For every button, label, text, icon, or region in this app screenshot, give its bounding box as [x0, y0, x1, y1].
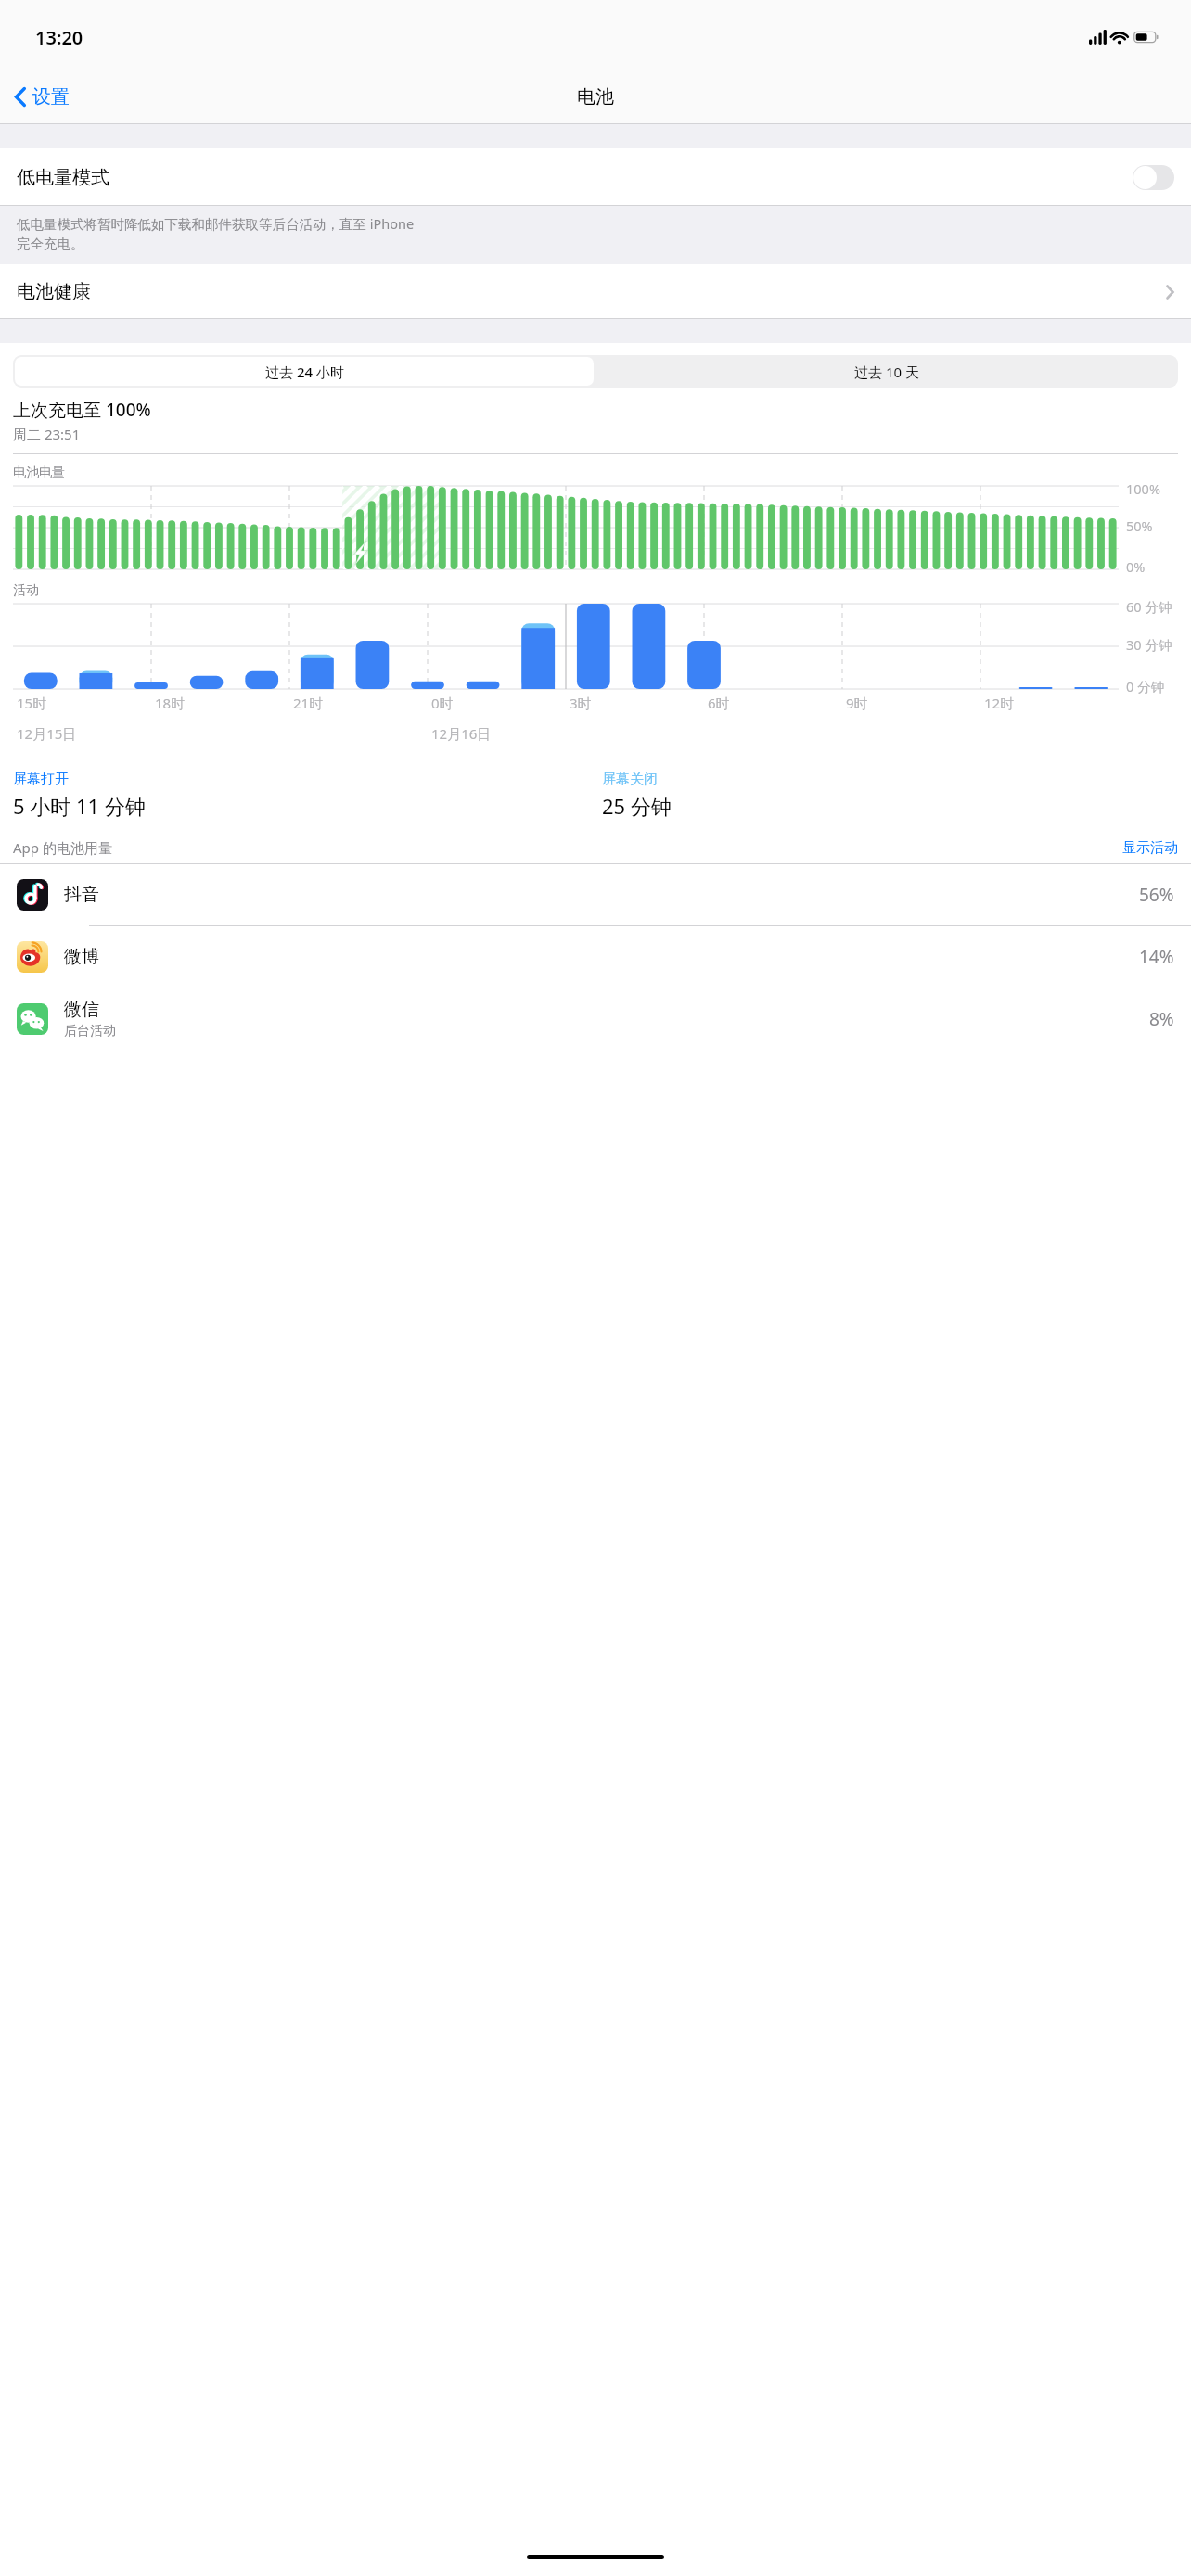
- staticText: 9时: [846, 694, 868, 712]
- button[interactable]: 设置: [9, 82, 75, 112]
- button[interactable]: 显示活动: [1122, 839, 1178, 857]
- staticText: 电池: [577, 85, 614, 108]
- button[interactable]: 微信: [0, 988, 1191, 1050]
- staticText: 低电量模式: [17, 166, 109, 189]
- staticText: 3时: [570, 694, 592, 712]
- staticText: 微信: [64, 999, 99, 1021]
- staticText: 抖音: [64, 884, 99, 906]
- staticText: 15时: [17, 694, 47, 712]
- staticText: 5 小时 11 分钟: [13, 792, 146, 820]
- button[interactable]: 低电量模式: [0, 148, 1191, 206]
- staticText: 50%: [1126, 516, 1153, 535]
- staticText: 电池电量: [13, 465, 65, 481]
- staticText: 12时: [984, 694, 1015, 712]
- staticText: 0 分钟: [1126, 677, 1165, 695]
- staticText: 上次充电至 100%: [13, 398, 151, 422]
- staticText: 25 分钟: [602, 792, 672, 820]
- staticText: 屏幕关闭: [602, 771, 658, 788]
- staticText: 13:20: [35, 25, 83, 50]
- button[interactable]: 电池健康: [0, 264, 1191, 319]
- staticText: 18时: [155, 694, 186, 712]
- staticText: 显示活动: [1122, 839, 1178, 857]
- button[interactable]: 抖音: [0, 864, 1191, 925]
- staticText: 电池健康: [17, 280, 91, 303]
- staticText: 56%: [1139, 883, 1174, 907]
- staticText: 0时: [431, 694, 454, 712]
- staticText: 14%: [1139, 945, 1174, 969]
- staticText: 过去 24 小时: [265, 363, 344, 381]
- staticText: 微博: [64, 946, 99, 968]
- staticText: 过去 10 天: [854, 363, 919, 381]
- staticText: 0%: [1126, 557, 1146, 576]
- staticText: 30 分钟: [1126, 635, 1172, 654]
- button[interactable]: Low Power Mode toggle: [1133, 165, 1174, 190]
- staticText: 60 分钟: [1126, 597, 1172, 616]
- staticText: 后台活动: [64, 1023, 116, 1039]
- staticText: 21时: [293, 694, 324, 712]
- staticText: 12月15日: [17, 724, 77, 743]
- staticText: App 的电池用量: [13, 838, 112, 857]
- staticText: 12月16日: [431, 724, 492, 743]
- staticText: 8%: [1149, 1007, 1174, 1031]
- staticText: 6时: [708, 694, 730, 712]
- staticText: 周二 23:51: [13, 425, 81, 443]
- staticText: 100%: [1126, 479, 1160, 498]
- staticText: 设置: [32, 85, 70, 108]
- button[interactable]: 微博: [0, 926, 1191, 988]
- staticText: 屏幕打开: [13, 771, 69, 788]
- staticText: 活动: [13, 582, 39, 599]
- staticText: 低电量模式将暂时降低如下载和邮件获取等后台活动，直至 iPhone 完全充电。: [17, 214, 415, 252]
- button[interactable]: 过去 24 小时: [15, 357, 594, 386]
- button[interactable]: 过去 10 天: [595, 355, 1178, 388]
